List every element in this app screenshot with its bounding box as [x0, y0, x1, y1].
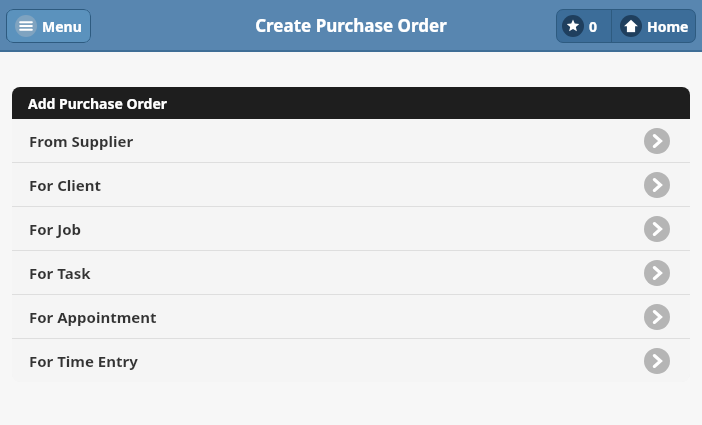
- button[interactable]: From Supplier: [12, 119, 690, 162]
- staticText: Add Purchase Order: [28, 94, 168, 113]
- button[interactable]: For Job: [12, 207, 690, 250]
- staticText: 0: [589, 17, 598, 36]
- button[interactable]: Favourites: [556, 9, 611, 43]
- staticText: For Task: [29, 263, 644, 283]
- staticText: From Supplier: [29, 131, 644, 151]
- button[interactable]: For Time Entry: [12, 339, 690, 382]
- staticText: Home: [647, 17, 689, 36]
- staticText: Create Purchase Order: [255, 14, 447, 37]
- button[interactable]: For Appointment: [12, 295, 690, 338]
- button[interactable]: For Client: [12, 163, 690, 206]
- staticText: For Client: [29, 175, 644, 195]
- button[interactable]: Menu: [7, 9, 91, 43]
- staticText: For Appointment: [29, 307, 644, 327]
- staticText: For Time Entry: [29, 351, 644, 371]
- button[interactable]: For Task: [12, 251, 690, 294]
- button[interactable]: Home: [612, 9, 696, 43]
- staticText: For Job: [29, 219, 644, 239]
- staticText: Menu: [42, 17, 82, 36]
